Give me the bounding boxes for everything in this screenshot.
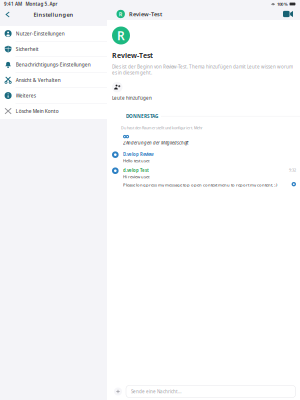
button[interactable]: Nutzer-Einstellungen xyxy=(0,26,107,41)
staticText: Leute hinzufügen xyxy=(112,95,152,101)
staticText: Review-Test xyxy=(129,10,162,18)
button[interactable]: Weiteres xyxy=(0,88,107,103)
staticText: R xyxy=(117,27,125,44)
staticText: Nutzer-Einstellungen xyxy=(16,30,65,37)
button[interactable]: Start video call xyxy=(281,8,295,20)
button[interactable]: Back xyxy=(0,8,20,21)
staticText: R xyxy=(119,10,123,18)
button[interactable]: Ansicht & Verhalten xyxy=(0,72,107,88)
button[interactable]: Benachrichtigungs-Einstellungen xyxy=(0,57,107,72)
staticText: Du hast den Raum erstellt und konfigurie… xyxy=(121,125,203,130)
button[interactable]: Add attachment xyxy=(112,385,124,397)
staticText: Hi review user. xyxy=(123,174,150,179)
staticText: Weiteres xyxy=(16,92,36,99)
staticText: Sende eine Nachricht… xyxy=(131,388,182,395)
staticText: Sicherheit xyxy=(16,46,39,52)
staticText: Montag 5. Apr xyxy=(25,1,57,7)
staticText: Dies ist der Beginn von Review-Test. The… xyxy=(112,63,293,76)
staticText: Benachrichtigungs-Einstellungen xyxy=(16,61,91,68)
staticText: 2 Änderungen der Mitgliedschaft xyxy=(123,140,188,146)
button[interactable]: Leute hinzufügen xyxy=(112,82,152,101)
staticText: 100 % xyxy=(277,1,288,7)
button[interactable]: Sicherheit xyxy=(0,41,107,57)
staticText: Hello test user. xyxy=(123,158,150,163)
staticText: 9:41 AM xyxy=(4,1,22,7)
staticText: Review-Test xyxy=(112,50,153,60)
staticText: Please longpress my message top open con… xyxy=(123,182,277,188)
staticText: D.velop Review xyxy=(123,151,154,157)
staticText: Ansicht & Verhalten xyxy=(16,77,61,83)
staticText: Lösche Mein Konto xyxy=(16,108,59,114)
staticText: 9:32 xyxy=(289,167,296,172)
button[interactable]: Sende eine Nachricht… xyxy=(126,385,295,397)
staticText: d.velop Test xyxy=(123,167,149,173)
staticText: Einstellungen xyxy=(33,11,73,18)
button[interactable]: Lösche Mein Konto xyxy=(0,103,107,119)
staticText: DONNERSTAG xyxy=(126,113,158,119)
